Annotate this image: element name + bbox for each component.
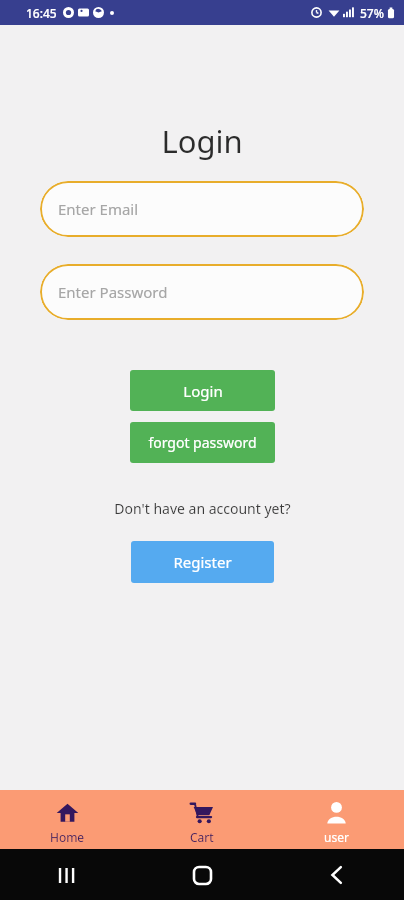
staticText: Home	[50, 829, 85, 845]
button[interactable]: Back	[320, 858, 354, 892]
button[interactable]: user	[269, 790, 404, 849]
staticText: 16:45	[26, 5, 57, 21]
button[interactable]: forgot password	[130, 422, 275, 463]
button[interactable]: Home	[0, 790, 134, 849]
button[interactable]: Enter Password	[40, 264, 364, 320]
staticText: forgot password	[148, 433, 257, 452]
button[interactable]: Recent apps	[50, 858, 84, 892]
staticText: Enter Email	[58, 199, 139, 219]
staticText: Don't have an account yet?	[114, 499, 291, 518]
button[interactable]: Home	[185, 858, 219, 892]
button[interactable]: Login	[130, 370, 275, 411]
button[interactable]: Register	[131, 541, 274, 583]
button[interactable]: Enter Email	[40, 181, 364, 237]
staticText: Cart	[190, 829, 214, 845]
staticText: Login	[161, 120, 243, 162]
button[interactable]: Cart	[134, 790, 269, 849]
staticText: user	[324, 829, 349, 845]
staticText: Register	[173, 552, 232, 572]
staticText: Login	[183, 381, 223, 401]
staticText: Enter Password	[58, 282, 168, 302]
staticText: 57%	[360, 5, 384, 21]
